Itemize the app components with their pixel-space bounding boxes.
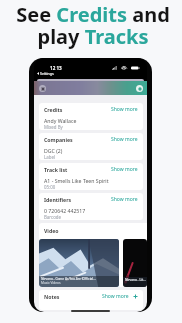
staticText: Show more (111, 166, 138, 173)
staticText: Notes (44, 293, 60, 300)
button[interactable]: Credits (44, 103, 138, 116)
button[interactable]: Close (39, 85, 46, 92)
staticText: DGC (2) (44, 147, 63, 154)
staticText: Music Videos (41, 281, 61, 285)
staticText: 05:00 (44, 184, 56, 190)
staticText: Credits (44, 106, 63, 113)
staticText: Andy Wallace (44, 117, 77, 124)
staticText: See Credits and play Tracks (2, 1, 182, 50)
staticText: Track list (44, 166, 68, 173)
staticText: Barcode (44, 214, 61, 220)
staticText: Nirvana - Come As You Are (Official... (41, 277, 96, 281)
staticText: Mixed By (44, 124, 63, 130)
staticText: Label (44, 154, 56, 160)
button[interactable]: Play video (123, 239, 147, 287)
staticText: Show more (111, 196, 138, 203)
staticText: Show more (102, 293, 129, 300)
staticText: Show more (111, 106, 138, 113)
staticText: Settings (40, 71, 54, 76)
staticText: Show more (111, 136, 138, 143)
staticText: 12 13 (50, 65, 62, 71)
staticText: A1 - Smells Like Teen Spirit (44, 177, 109, 184)
button[interactable]: Companies (44, 133, 138, 146)
button[interactable]: Back to Settings (37, 71, 54, 76)
button[interactable]: Play video (39, 239, 119, 287)
staticText: Video (44, 227, 59, 234)
button[interactable]: Identifiers (44, 193, 138, 206)
button[interactable]: Track list (44, 163, 138, 176)
staticText: Companies (44, 136, 73, 143)
button[interactable]: Notes (44, 290, 138, 303)
staticText: 0 720642 442517 (44, 207, 86, 214)
staticText: Nirvana - Lit... (125, 278, 146, 282)
staticText: Identifiers (44, 196, 72, 203)
button[interactable]: Options (136, 85, 143, 92)
